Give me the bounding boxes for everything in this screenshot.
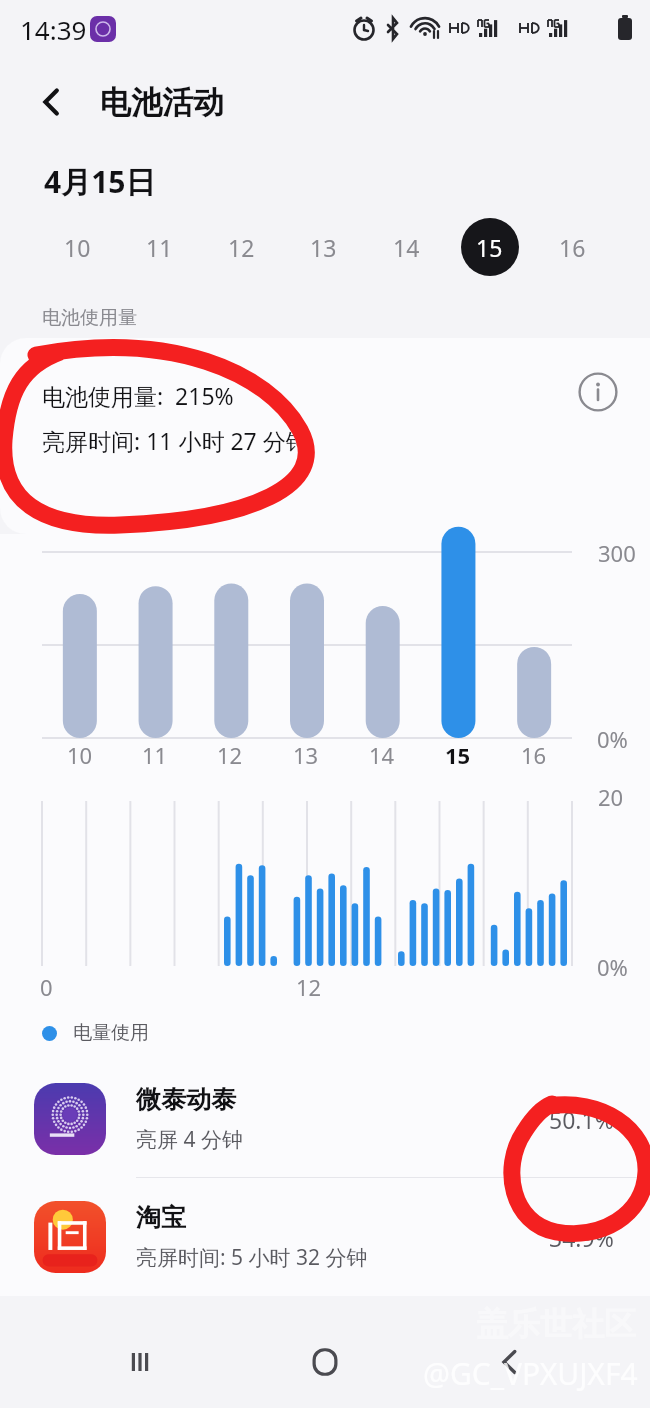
staticText: 4月15日 — [44, 161, 156, 202]
button[interactable]: Recent apps — [108, 1330, 172, 1394]
staticText: 0% — [597, 724, 628, 754]
staticText: 电池使用量 — [42, 306, 137, 330]
staticText: 0 — [40, 972, 53, 1002]
staticText: 亮屏 4 分钟 — [136, 1125, 243, 1154]
staticText: 13 — [310, 232, 337, 263]
staticText: 50.1% — [549, 1104, 614, 1135]
button[interactable]: 淘宝 — [0, 1178, 650, 1296]
button[interactable]: 12 — [200, 216, 282, 278]
staticText: 300 — [598, 538, 636, 568]
staticText: 14:39 — [20, 12, 87, 47]
staticText: 淘宝 — [136, 1202, 186, 1233]
staticText: 34.9% — [549, 1222, 614, 1253]
staticText: 12 — [296, 972, 322, 1002]
button[interactable]: Information — [574, 368, 622, 416]
staticText: 14 — [369, 740, 395, 770]
button[interactable]: 13 — [282, 216, 365, 278]
staticText: 20 — [598, 782, 624, 812]
staticText: 16 — [559, 232, 586, 263]
staticText: 0% — [597, 952, 628, 982]
staticText: 11 — [146, 232, 173, 263]
button[interactable]: 电池使用量: 215% — [0, 338, 650, 534]
button[interactable]: Back — [26, 76, 78, 128]
staticText: 14 — [393, 232, 420, 263]
button[interactable]: 14 — [365, 216, 448, 278]
staticText: 10 — [64, 232, 91, 263]
staticText: 电量使用 — [73, 1021, 149, 1045]
button[interactable]: 11 — [118, 216, 200, 278]
button[interactable]: 10 — [36, 216, 118, 278]
staticText: 12 — [217, 740, 243, 770]
staticText: 亮屏时间: 11 小时 27 分钟 — [42, 425, 309, 456]
staticText: 电池使用量: 215% — [42, 380, 234, 411]
staticText: 13 — [293, 740, 319, 770]
button[interactable]: 16 — [531, 216, 614, 278]
staticText: 12 — [228, 232, 255, 263]
staticText: 15 — [445, 740, 471, 770]
staticText: 16 — [521, 740, 547, 770]
button[interactable]: Back — [478, 1330, 542, 1394]
staticText: 电池活动 — [100, 83, 224, 122]
button[interactable]: 15 — [448, 216, 531, 278]
staticText: 15 — [476, 232, 503, 263]
staticText: 11 — [142, 740, 168, 770]
button[interactable]: 微泰动泰 — [0, 1060, 650, 1178]
button[interactable]: Home — [293, 1330, 357, 1394]
staticText: @GC_VPXUJXF4 — [423, 1353, 638, 1394]
staticText: 微泰动泰 — [136, 1084, 236, 1115]
staticText: 亮屏时间: 5 小时 32 分钟 — [136, 1243, 368, 1272]
staticText: 10 — [67, 740, 93, 770]
